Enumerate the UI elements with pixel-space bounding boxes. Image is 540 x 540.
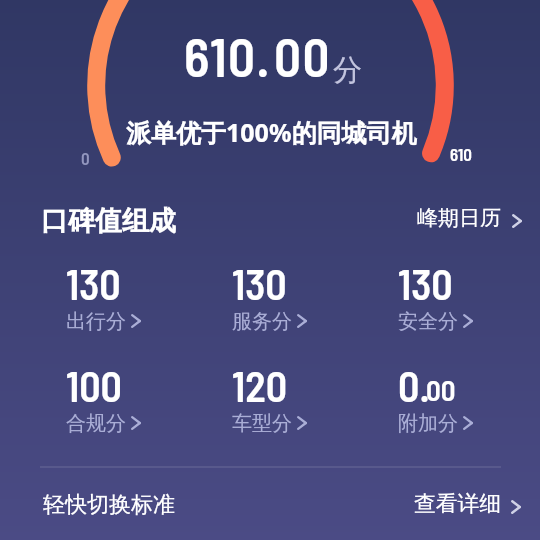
staticText: 派单优于100%的同城司机 bbox=[126, 115, 417, 149]
staticText: 车型分 bbox=[232, 411, 292, 436]
staticText: 100 bbox=[66, 360, 122, 410]
button[interactable]: 峰期日历 bbox=[417, 205, 522, 231]
button[interactable]: 100 bbox=[66, 360, 141, 436]
staticText: 120 bbox=[232, 360, 288, 410]
staticText: 查看详细 bbox=[414, 490, 502, 517]
staticText: 0 bbox=[81, 148, 90, 168]
staticText: 610. bbox=[184, 24, 271, 88]
button[interactable]: 120 bbox=[232, 360, 307, 436]
staticText: 出行分 bbox=[66, 309, 126, 334]
button[interactable]: 130 bbox=[398, 258, 473, 334]
staticText: 610 bbox=[450, 144, 472, 164]
staticText: 分 bbox=[333, 52, 362, 89]
staticText: 130 bbox=[232, 258, 287, 308]
staticText: 附加分 bbox=[398, 411, 458, 436]
staticText: 服务分 bbox=[232, 309, 292, 334]
staticText: 合规分 bbox=[66, 411, 126, 436]
staticText: 130 bbox=[398, 258, 453, 308]
staticText: 安全分 bbox=[398, 309, 458, 334]
staticText: 130 bbox=[66, 258, 121, 308]
staticText: 0. bbox=[398, 360, 430, 410]
staticText: 口碑值组成 bbox=[41, 204, 176, 238]
button[interactable]: 0. bbox=[398, 360, 473, 436]
staticText: 00 bbox=[274, 24, 331, 88]
button[interactable]: 查看详细 bbox=[414, 490, 521, 517]
staticText: 峰期日历 bbox=[417, 205, 501, 231]
button[interactable]: 130 bbox=[232, 258, 307, 334]
button[interactable]: 130 bbox=[66, 258, 141, 334]
staticText: 00 bbox=[426, 372, 456, 407]
button[interactable]: 轻快切换标准 bbox=[43, 491, 175, 519]
